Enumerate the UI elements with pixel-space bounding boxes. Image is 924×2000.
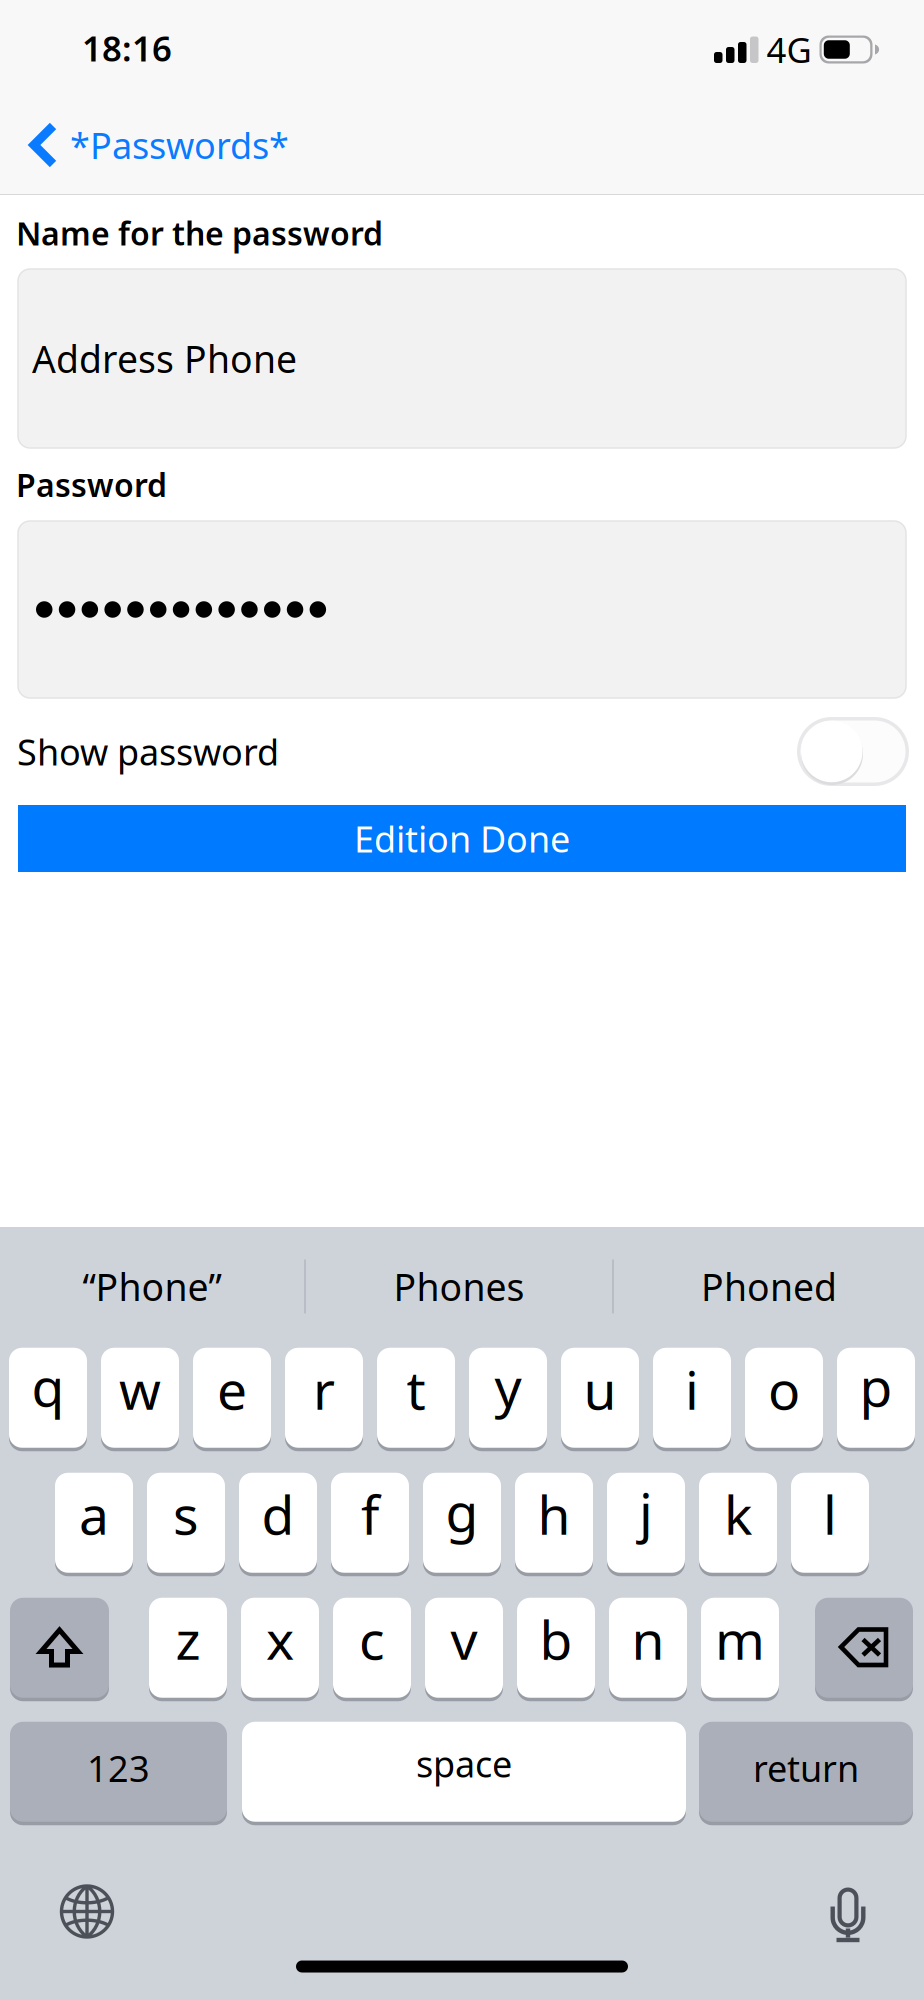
button[interactable]: h — [515, 1473, 593, 1576]
staticText: l — [823, 1479, 837, 1549]
staticText: k — [724, 1479, 752, 1549]
button[interactable]: f — [331, 1473, 409, 1576]
button[interactable]: b — [517, 1598, 595, 1701]
staticText: c — [359, 1604, 385, 1674]
button[interactable]: u — [561, 1348, 639, 1451]
button[interactable]: a — [55, 1473, 133, 1576]
button[interactable]: d — [239, 1473, 317, 1576]
staticText: w — [119, 1354, 161, 1424]
staticText: s — [173, 1479, 199, 1549]
staticText: Phoned — [701, 1262, 837, 1311]
staticText: d — [261, 1479, 294, 1549]
staticText: x — [266, 1604, 294, 1674]
button[interactable]: *Passwords* — [0, 96, 311, 194]
staticText: z — [175, 1604, 200, 1674]
staticText: h — [537, 1479, 570, 1549]
staticText: g — [445, 1476, 478, 1546]
staticText: q — [31, 1351, 64, 1421]
staticText: 4G — [766, 26, 811, 72]
button[interactable]: v — [425, 1598, 503, 1701]
staticText: Name for the password — [16, 212, 383, 254]
button[interactable]: s — [147, 1473, 225, 1576]
staticText: 123 — [87, 1744, 150, 1792]
staticText: u — [583, 1354, 616, 1424]
staticText: y — [494, 1351, 521, 1421]
staticText: Address Phone — [32, 334, 297, 383]
staticText: Phones — [393, 1262, 524, 1311]
staticText: i — [685, 1354, 699, 1424]
staticText: space — [416, 1740, 512, 1787]
staticText: p — [859, 1351, 892, 1421]
button[interactable]: q — [9, 1348, 87, 1451]
button[interactable]: o — [745, 1348, 823, 1451]
button[interactable]: 123 — [10, 1722, 227, 1825]
staticText: “Phone” — [82, 1262, 221, 1311]
staticText: a — [79, 1479, 109, 1549]
button[interactable]: y — [469, 1348, 547, 1451]
button[interactable]: p — [837, 1348, 915, 1451]
button[interactable]: Delete — [815, 1597, 913, 1701]
button[interactable]: c — [333, 1598, 411, 1701]
button[interactable]: z — [149, 1598, 227, 1701]
button[interactable]: return — [699, 1722, 913, 1825]
button[interactable]: Dictate — [808, 1876, 888, 1956]
button[interactable]: space — [242, 1722, 686, 1825]
staticText: v — [450, 1604, 477, 1674]
staticText: n — [631, 1604, 664, 1674]
staticText: return — [753, 1744, 859, 1792]
staticText: b — [539, 1604, 572, 1674]
staticText: o — [768, 1354, 800, 1424]
staticText: 18:16 — [82, 25, 172, 71]
staticText: f — [361, 1479, 379, 1549]
button[interactable]: Next keyboard — [42, 1871, 132, 1951]
button[interactable]: “Phone” — [0, 1231, 304, 1341]
button[interactable]: k — [699, 1473, 777, 1576]
button[interactable]: i — [653, 1348, 731, 1451]
button[interactable]: g — [423, 1473, 501, 1576]
staticText: e — [217, 1354, 247, 1424]
button[interactable]: Phoned — [614, 1231, 924, 1341]
button[interactable]: j — [607, 1473, 685, 1576]
button[interactable]: t — [377, 1348, 455, 1451]
button[interactable]: Phones — [306, 1231, 612, 1341]
staticText: Show password — [17, 728, 279, 775]
button[interactable]: r — [285, 1348, 363, 1451]
button[interactable]: w — [101, 1348, 179, 1451]
button[interactable]: n — [609, 1598, 687, 1701]
staticText: r — [313, 1354, 335, 1424]
button[interactable]: e — [193, 1348, 271, 1451]
button[interactable]: x — [241, 1598, 319, 1701]
staticText: m — [715, 1604, 765, 1674]
staticText: t — [406, 1354, 425, 1424]
staticText: Password — [16, 463, 167, 506]
staticText: *Passwords* — [70, 121, 289, 169]
button[interactable]: Shift — [10, 1597, 109, 1701]
staticText: Edition Done — [354, 815, 570, 862]
button[interactable]: Show password — [797, 717, 909, 786]
staticText: j — [639, 1476, 653, 1546]
button[interactable]: m — [701, 1598, 779, 1701]
button[interactable]: l — [791, 1473, 869, 1576]
button[interactable]: Edition Done — [18, 805, 906, 872]
